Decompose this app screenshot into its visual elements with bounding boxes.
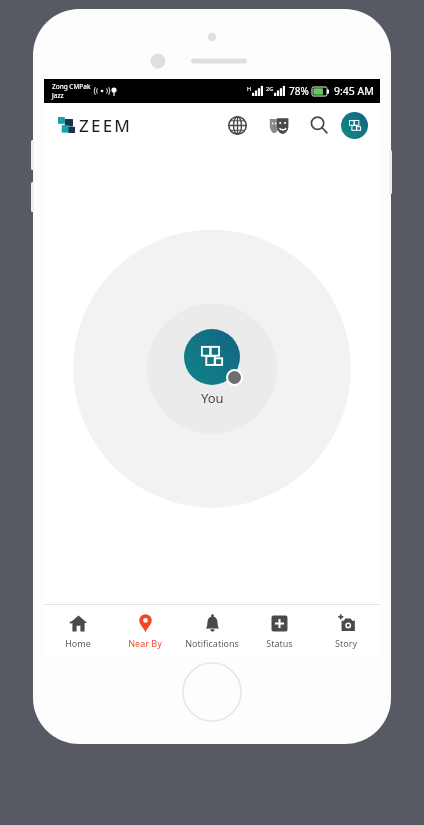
button[interactable]: Entertainment [262,108,296,142]
button[interactable]: You [184,329,240,385]
button[interactable]: Story [313,605,379,657]
button[interactable]: ZEEM [58,114,133,137]
staticText: 78% [289,84,309,98]
staticText: 2G [266,85,274,92]
staticText: Status [266,637,293,649]
staticText: Home [65,637,91,649]
staticText: Near By [128,637,162,649]
button[interactable]: Search [302,108,336,142]
button[interactable]: Language [220,108,254,142]
button[interactable]: Notifications [179,605,245,657]
staticText: Jazz [52,91,64,100]
staticText: Zong CMPak [52,82,91,91]
staticText: ZEEM [79,114,133,137]
staticText: Notifications [185,637,239,649]
staticText: Story [335,637,357,649]
button[interactable]: Profile [341,112,368,139]
button[interactable]: Near By [112,605,178,657]
staticText: H [247,85,252,92]
staticText: You [201,389,224,407]
staticText: 9:45 AM [334,84,374,98]
button[interactable]: Status [246,605,312,657]
button[interactable]: Home [45,605,111,657]
